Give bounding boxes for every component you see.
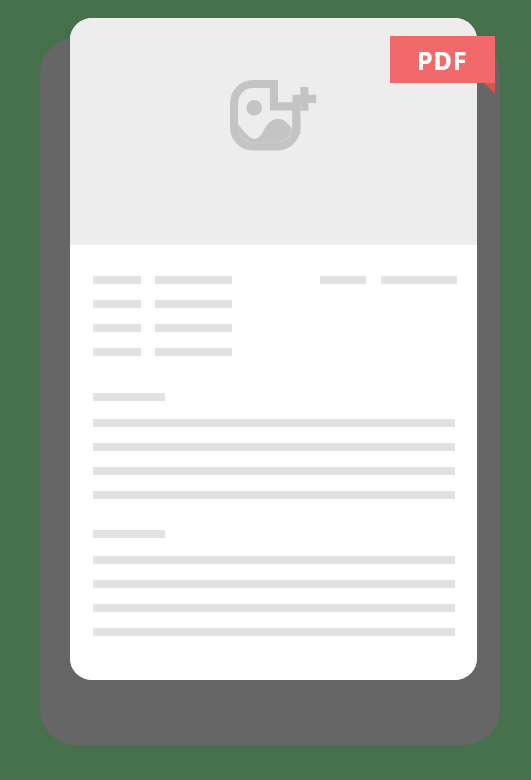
staticText: PDF [417, 43, 468, 77]
button[interactable]: Add photo [70, 18, 477, 680]
button[interactable]: PDF [390, 36, 495, 83]
button[interactable]: Add photo [230, 80, 318, 168]
